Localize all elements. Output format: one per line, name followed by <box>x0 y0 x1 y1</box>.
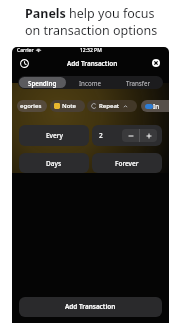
staticText: Every <box>46 131 63 140</box>
staticText: Add Transaction <box>67 59 118 68</box>
button[interactable]: Income <box>66 77 114 88</box>
staticText: Transfer <box>126 79 150 87</box>
staticText: on transaction options <box>25 22 158 39</box>
staticText: 2 <box>99 131 103 140</box>
button[interactable]: History <box>20 59 29 68</box>
button[interactable]: Note <box>50 100 85 112</box>
button[interactable]: Add Transaction <box>19 297 162 317</box>
staticText: Repeat <box>99 102 120 110</box>
staticText: Income <box>79 79 101 87</box>
staticText: Spending <box>28 79 57 87</box>
staticText: Note <box>62 102 77 110</box>
staticText: Carrier <box>17 47 34 54</box>
staticText: egories <box>20 102 42 110</box>
button[interactable]: Repeat <box>87 100 137 112</box>
button[interactable]: In <box>141 100 169 112</box>
staticText: Forever <box>115 159 139 168</box>
staticText: 12:32 PM <box>80 47 102 54</box>
button[interactable]: Transfer <box>114 77 162 88</box>
button[interactable]: Spending <box>19 77 66 88</box>
button[interactable]: Decrease <box>122 129 139 142</box>
staticText: In <box>153 102 160 110</box>
staticText: Days <box>46 159 62 168</box>
button[interactable]: Close <box>152 59 160 67</box>
staticText: Panels help you focus <box>25 5 155 22</box>
button[interactable]: Days <box>19 153 89 173</box>
button[interactable]: Increase <box>140 129 157 142</box>
button[interactable]: egories <box>17 100 47 112</box>
button[interactable]: Every <box>19 125 89 146</box>
button[interactable]: Forever <box>92 153 162 173</box>
staticText: Add Transaction <box>65 302 116 311</box>
